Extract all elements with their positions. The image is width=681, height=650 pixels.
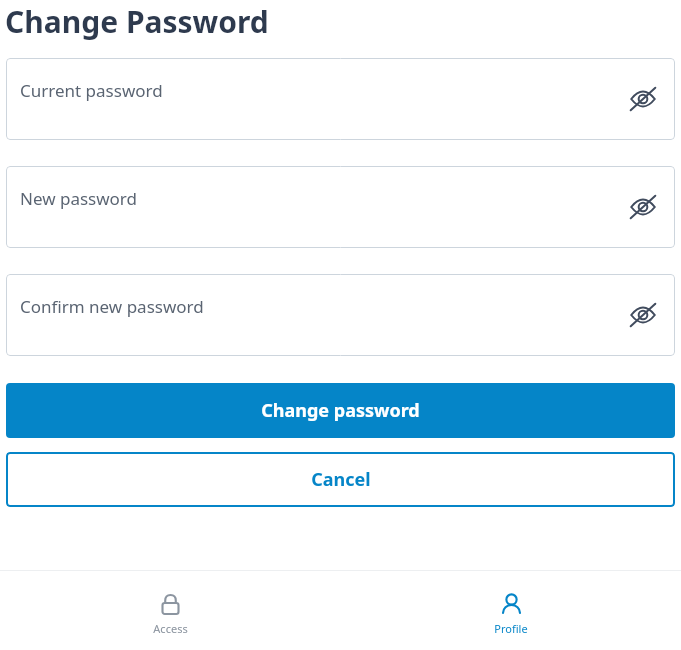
button[interactable]: Confirm new password <box>6 274 675 356</box>
staticText: Confirm new password <box>20 295 204 318</box>
staticText: Change password <box>261 398 420 423</box>
staticText: New password <box>20 187 138 210</box>
button[interactable]: Change password <box>6 383 675 438</box>
button[interactable]: Show password <box>625 189 661 225</box>
staticText: Cancel <box>311 467 371 492</box>
staticText: Change Password <box>5 1 269 42</box>
button[interactable]: New password <box>6 166 675 248</box>
button[interactable]: Current password <box>6 58 675 140</box>
staticText: Access <box>153 621 188 636</box>
button[interactable]: Access <box>0 571 340 650</box>
button[interactable]: Show password <box>625 81 661 117</box>
button[interactable]: Cancel <box>6 452 675 507</box>
staticText: Current password <box>20 79 163 102</box>
button[interactable]: Profile <box>340 571 681 650</box>
staticText: Profile <box>494 621 528 636</box>
button[interactable]: Show password <box>625 297 661 333</box>
